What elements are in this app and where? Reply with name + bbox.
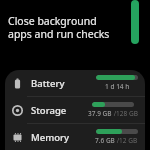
staticText: 7.6 GB bbox=[95, 136, 115, 145]
staticText: Close background apps and run checks bbox=[8, 14, 110, 41]
other: Battery bbox=[11, 77, 24, 90]
staticText: Storage bbox=[31, 104, 88, 117]
other: Memory bbox=[11, 131, 24, 144]
button[interactable]: Storage bbox=[5, 97, 145, 123]
button[interactable]: Memory bbox=[5, 124, 145, 150]
staticText: /12 GB bbox=[115, 136, 138, 145]
staticText: 1 d 14 h bbox=[105, 82, 130, 91]
other: Storage bbox=[11, 104, 24, 117]
staticText: /128 GB bbox=[112, 109, 138, 118]
staticText: Battery bbox=[31, 77, 96, 90]
button[interactable]: Battery bbox=[5, 70, 145, 96]
staticText: 37.9 GB bbox=[88, 109, 112, 118]
staticText: Memory bbox=[31, 131, 95, 144]
